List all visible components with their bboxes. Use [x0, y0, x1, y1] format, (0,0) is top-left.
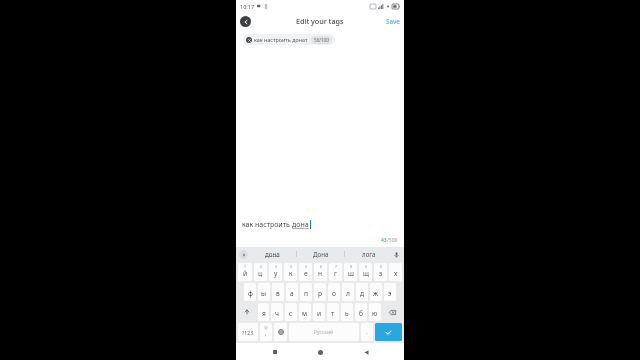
- staticText: у: [274, 269, 278, 278]
- button[interactable]: ?123: [238, 323, 258, 341]
- staticText: Русский: [314, 329, 334, 336]
- button[interactable]: 2: [254, 263, 267, 281]
- staticText: 2: [260, 264, 262, 269]
- button[interactable]: Recents: [268, 345, 282, 359]
- button[interactable]: 7: [329, 263, 342, 281]
- button[interactable]: х: [389, 263, 402, 281]
- button[interactable]: Comma: [260, 323, 272, 341]
- button[interactable]: с: [285, 303, 297, 321]
- staticText: п: [304, 289, 308, 298]
- button[interactable]: э: [384, 283, 396, 301]
- button[interactable]: More suggestions: [239, 250, 248, 259]
- staticText: 6: [320, 264, 322, 269]
- staticText: /500: [387, 237, 398, 244]
- button[interactable]: Backspace: [383, 303, 402, 321]
- button[interactable]: Period: [361, 323, 373, 341]
- button[interactable]: ч: [271, 303, 283, 321]
- staticText: 3: [275, 264, 277, 269]
- staticText: е: [304, 269, 308, 278]
- button[interactable]: 0: [374, 263, 387, 281]
- staticText: Save: [386, 17, 400, 25]
- staticText: ☺: [264, 326, 268, 330]
- button[interactable]: Done: [375, 323, 402, 341]
- staticText: Дона: [313, 250, 329, 258]
- button[interactable]: 5: [299, 263, 312, 281]
- button[interactable]: ф: [244, 283, 256, 301]
- staticText: э: [388, 289, 392, 298]
- button[interactable]: лога: [360, 248, 378, 260]
- button[interactable]: Change language: [274, 323, 287, 341]
- button[interactable]: ы: [258, 283, 270, 301]
- button[interactable]: 1: [238, 263, 252, 281]
- button[interactable]: я: [258, 303, 269, 321]
- staticText: как настроить: [242, 220, 292, 230]
- button[interactable]: Shift: [238, 303, 256, 321]
- staticText: й: [243, 269, 248, 278]
- staticText: в: [276, 289, 280, 298]
- staticText: ф: [248, 289, 253, 298]
- staticText: ш: [348, 269, 354, 278]
- staticText: я: [262, 309, 266, 318]
- staticText: ж: [373, 289, 379, 298]
- staticText: Edit your tags: [296, 16, 344, 26]
- staticText: 10:17: [240, 3, 255, 10]
- staticText: лога: [362, 250, 376, 258]
- button[interactable]: т: [327, 303, 339, 321]
- staticText: и: [317, 309, 322, 318]
- staticText: х: [394, 269, 398, 278]
- staticText: л: [346, 289, 350, 298]
- staticText: ы: [261, 289, 267, 298]
- staticText: б: [359, 309, 363, 318]
- staticText: т: [331, 309, 335, 318]
- button[interactable]: 8: [344, 263, 357, 281]
- button[interactable]: 4: [284, 263, 297, 281]
- staticText: о: [332, 289, 336, 298]
- button[interactable]: ь: [341, 303, 353, 321]
- staticText: ь: [345, 309, 349, 318]
- staticText: к: [289, 269, 293, 278]
- button[interactable]: м: [299, 303, 311, 321]
- button[interactable]: а: [286, 283, 298, 301]
- staticText: с: [289, 309, 293, 318]
- staticText: н: [318, 269, 323, 278]
- staticText: р: [318, 289, 323, 298]
- staticText: д: [360, 289, 365, 298]
- staticText: г: [334, 269, 337, 278]
- button[interactable]: л: [342, 283, 354, 301]
- staticText: 1: [244, 264, 246, 269]
- button[interactable]: Home: [313, 345, 327, 359]
- button[interactable]: Дона: [311, 248, 331, 260]
- button[interactable]: дона: [263, 248, 282, 260]
- button[interactable]: 9: [359, 263, 372, 281]
- button[interactable]: как настроить донат: [243, 34, 335, 45]
- staticText: ?123: [242, 329, 254, 336]
- staticText: дона: [292, 220, 309, 230]
- button[interactable]: о: [328, 283, 340, 301]
- staticText: ч: [275, 309, 279, 318]
- staticText: 56/100: [314, 37, 329, 43]
- button[interactable]: Voice input: [392, 250, 401, 259]
- button[interactable]: Back: [240, 16, 251, 27]
- button[interactable]: и: [313, 303, 325, 321]
- staticText: а: [290, 289, 294, 298]
- button[interactable]: р: [314, 283, 326, 301]
- button[interactable]: п: [300, 283, 312, 301]
- button[interactable]: Back: [359, 345, 373, 359]
- staticText: 4: [290, 264, 292, 269]
- button[interactable]: ж: [370, 283, 382, 301]
- button[interactable]: Save: [382, 14, 404, 28]
- button[interactable]: Русский: [289, 323, 359, 341]
- staticText: 7: [335, 264, 337, 269]
- staticText: 43: [381, 237, 387, 244]
- staticText: как настроить донат: [254, 36, 308, 43]
- button[interactable]: 3: [269, 263, 282, 281]
- button[interactable]: 6: [314, 263, 327, 281]
- staticText: 9: [365, 264, 367, 269]
- staticText: ю: [372, 309, 378, 318]
- button[interactable]: в: [272, 283, 284, 301]
- button[interactable]: б: [355, 303, 367, 321]
- button[interactable]: д: [356, 283, 368, 301]
- staticText: .: [366, 328, 368, 336]
- button[interactable]: ю: [369, 303, 381, 321]
- staticText: 5: [305, 264, 307, 269]
